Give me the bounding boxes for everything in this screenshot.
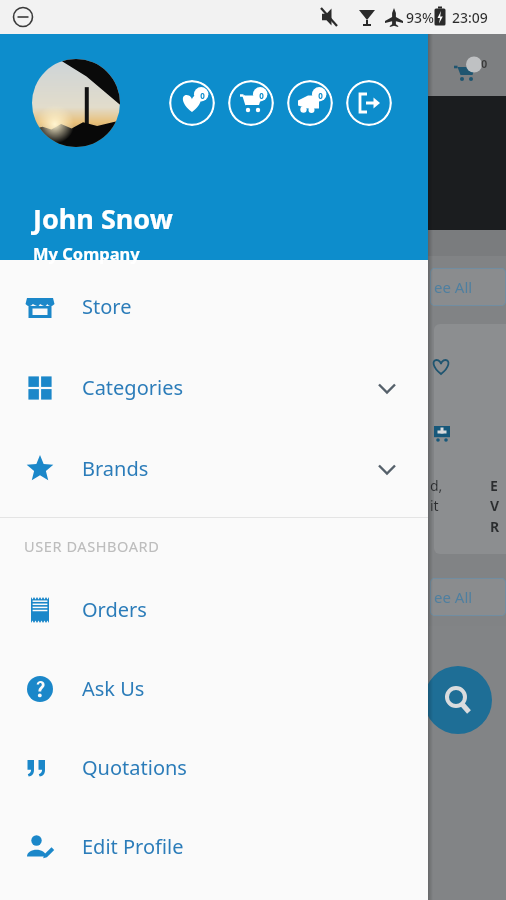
button[interactable]: ee All bbox=[430, 578, 506, 616]
staticText: Store bbox=[82, 293, 132, 320]
staticText: Categories bbox=[82, 374, 184, 401]
button[interactable]: Ask Us bbox=[0, 649, 428, 728]
button[interactable]: Profile photo bbox=[32, 59, 120, 147]
button[interactable]: Categories bbox=[0, 347, 428, 428]
staticText: 0 bbox=[259, 90, 264, 101]
button[interactable]: Orders bbox=[0, 570, 428, 649]
button[interactable]: Notifications bbox=[287, 80, 333, 126]
button[interactable]: Cart bbox=[228, 80, 274, 126]
staticText: Brands bbox=[82, 455, 149, 482]
staticText: 0 bbox=[481, 56, 488, 71]
button[interactable]: Edit Profile bbox=[0, 807, 428, 886]
staticText: d, it bbox=[430, 476, 443, 515]
staticText: USER DASHBOARD bbox=[24, 536, 160, 556]
button[interactable]: Wishlist bbox=[169, 80, 215, 126]
staticText: Ask Us bbox=[82, 675, 145, 702]
staticText: E V R bbox=[490, 476, 500, 537]
staticText: ee All bbox=[434, 587, 473, 607]
staticText: 0 bbox=[200, 90, 205, 101]
staticText: 23:09 bbox=[452, 8, 488, 27]
button[interactable]: Quotations bbox=[0, 728, 428, 807]
button[interactable]: Logout bbox=[346, 80, 392, 126]
staticText: Quotations bbox=[82, 754, 187, 781]
staticText: 0 bbox=[318, 90, 323, 101]
button[interactable]: Store bbox=[0, 266, 428, 347]
button[interactable]: Search bbox=[424, 666, 492, 734]
staticText: My Company bbox=[33, 242, 140, 264]
staticText: Edit Profile bbox=[82, 833, 184, 860]
staticText: 93% bbox=[406, 8, 434, 27]
staticText: ee All bbox=[434, 277, 473, 297]
staticText: John Snow bbox=[33, 200, 173, 237]
staticText: Orders bbox=[82, 596, 147, 623]
button[interactable]: Brands bbox=[0, 428, 428, 509]
button[interactable]: ee All bbox=[430, 268, 506, 306]
